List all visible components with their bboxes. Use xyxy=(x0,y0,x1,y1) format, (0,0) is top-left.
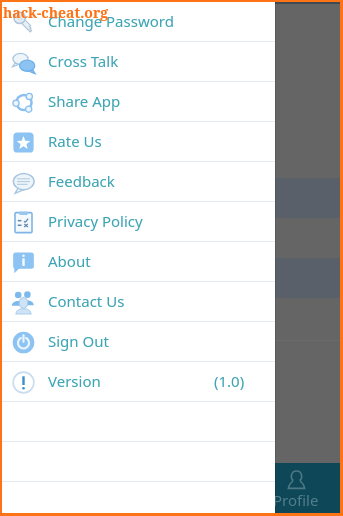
staticText: (1.0) xyxy=(214,371,245,391)
button[interactable]: Privacy Policy xyxy=(0,202,275,242)
button[interactable]: About xyxy=(0,242,275,282)
button[interactable]: Feedback xyxy=(0,162,275,202)
staticText: Change Password xyxy=(48,11,174,31)
staticText: Sign Out xyxy=(48,331,109,351)
staticText: Cross Talk xyxy=(48,51,119,71)
staticText: hack-cheat.org xyxy=(3,3,109,22)
button[interactable]: Rate Us xyxy=(0,122,275,162)
staticText: About xyxy=(48,251,91,271)
button[interactable]: Profile xyxy=(253,463,339,513)
button[interactable]: Cross Talk xyxy=(0,42,275,82)
button[interactable]: Contact Us xyxy=(0,282,275,322)
staticText: Privacy Policy xyxy=(48,211,143,231)
button[interactable]: Sign Out xyxy=(0,322,275,362)
staticText: Version xyxy=(48,371,101,391)
button[interactable]: Change Password xyxy=(0,2,275,42)
staticText: Feedback xyxy=(48,171,115,191)
staticText: Share App xyxy=(48,91,121,111)
staticText: Profile xyxy=(273,490,319,510)
staticText: Rate Us xyxy=(48,131,102,151)
staticText: Contact Us xyxy=(48,291,125,311)
button[interactable]: Share App xyxy=(0,82,275,122)
button[interactable]: Version xyxy=(0,362,275,402)
